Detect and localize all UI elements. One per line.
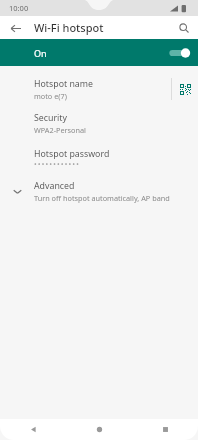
- button[interactable]: Hotspot password: [0, 140, 198, 174]
- staticText: Hotspot password: [34, 148, 110, 160]
- staticText: moto e(7): [34, 91, 67, 101]
- staticText: Turn off hotspot automatically, AP band: [34, 193, 170, 203]
- staticText: 10:00: [9, 3, 29, 13]
- staticText: Hotspot name: [34, 78, 93, 90]
- button[interactable]: Search: [176, 20, 192, 36]
- button[interactable]: Share hotspot QR code: [172, 72, 198, 106]
- button[interactable]: Back: [7, 20, 23, 36]
- staticText: Security: [34, 112, 68, 124]
- button[interactable]: Home: [66, 419, 132, 440]
- button[interactable]: Hotspot name: [0, 72, 198, 106]
- button[interactable]: On: [0, 39, 198, 66]
- button[interactable]: Hotspot on: [168, 46, 190, 60]
- staticText: WPA2-Personal: [34, 125, 86, 135]
- button[interactable]: Advanced: [0, 174, 198, 208]
- button[interactable]: Recent apps: [132, 419, 198, 440]
- staticText: Advanced: [34, 180, 75, 192]
- button[interactable]: Security: [0, 106, 198, 140]
- staticText: On: [34, 47, 47, 59]
- button[interactable]: Back: [0, 419, 66, 440]
- staticText: Wi-Fi hotspot: [34, 20, 104, 35]
